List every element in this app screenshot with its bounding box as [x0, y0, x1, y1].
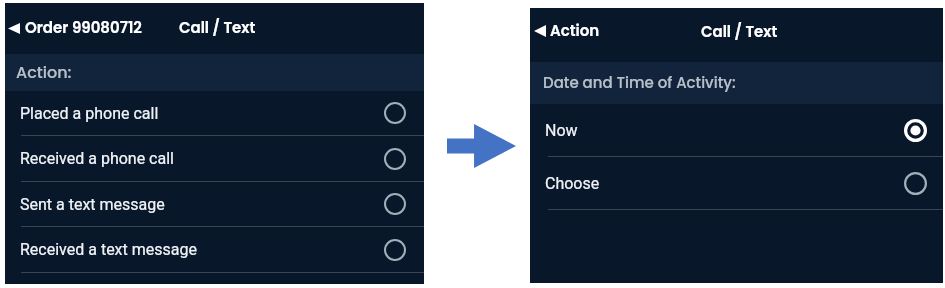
staticText: Now: [545, 121, 578, 140]
button[interactable]: Received a phone call: [5, 136, 424, 181]
button[interactable]: Choose: [530, 157, 943, 209]
staticText: Choose: [545, 174, 600, 193]
staticText: Action: [550, 20, 600, 41]
staticText: Sent a text message: [20, 195, 165, 214]
button[interactable]: Back to Action: [530, 4, 606, 58]
staticText: Placed a phone call: [20, 104, 159, 123]
button[interactable]: Sent a text message: [5, 182, 424, 226]
button[interactable]: Back to Order 99080712: [5, 3, 148, 54]
staticText: Call / Text: [179, 17, 256, 38]
button[interactable]: Placed a phone call: [5, 91, 424, 135]
staticText: Call / Text: [701, 21, 778, 42]
staticText: Received a text message: [20, 240, 197, 259]
button[interactable]: Now: [530, 104, 943, 156]
button[interactable]: Received a text message: [5, 227, 424, 272]
staticText: Received a phone call: [20, 149, 174, 168]
staticText: Order 99080712: [25, 17, 142, 38]
staticText: Action:: [16, 61, 72, 83]
staticText: Date and Time of Activity:: [543, 72, 736, 93]
